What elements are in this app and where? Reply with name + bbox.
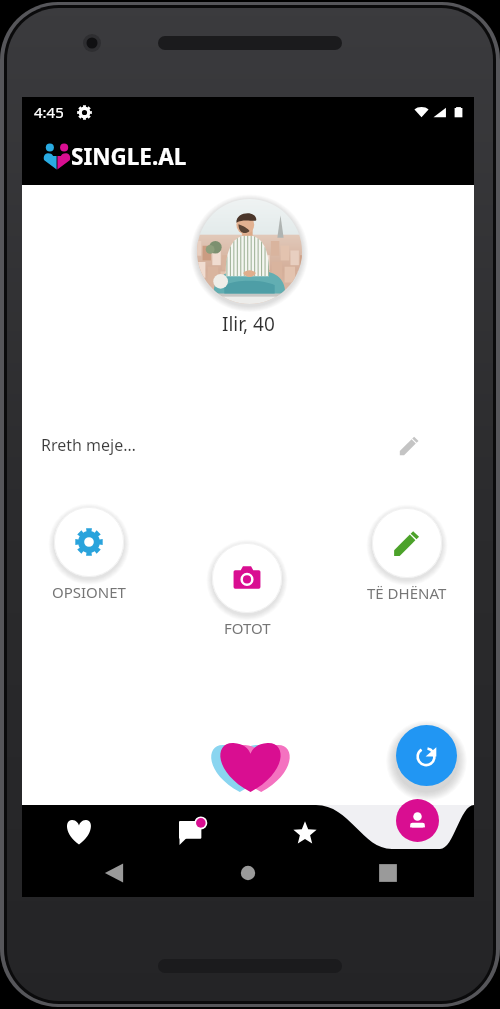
staticText: OPSIONET: [52, 582, 126, 602]
staticText: SINGLE.AL: [71, 141, 187, 172]
button[interactable]: Refresh: [396, 725, 457, 786]
staticText: FOTOT: [224, 618, 271, 638]
staticText: Ilir, 40: [222, 311, 275, 337]
button[interactable]: Rreth meje…: [22, 427, 474, 463]
button[interactable]: Favourites: [22, 810, 135, 854]
button[interactable]: Profile: [396, 799, 439, 842]
button[interactable]: Starred: [248, 810, 361, 854]
staticText: TË DHËNAT: [367, 583, 447, 603]
button[interactable]: TË DHËNAT: [357, 505, 457, 603]
button[interactable]: Profile photo: [197, 199, 302, 304]
staticText: Rreth meje…: [41, 434, 136, 456]
other: Edit about me: [391, 427, 427, 463]
button[interactable]: FOTOT: [197, 540, 297, 638]
button[interactable]: Messages: [135, 810, 248, 854]
staticText: 4:45: [34, 102, 64, 122]
button[interactable]: OPSIONET: [39, 504, 139, 602]
